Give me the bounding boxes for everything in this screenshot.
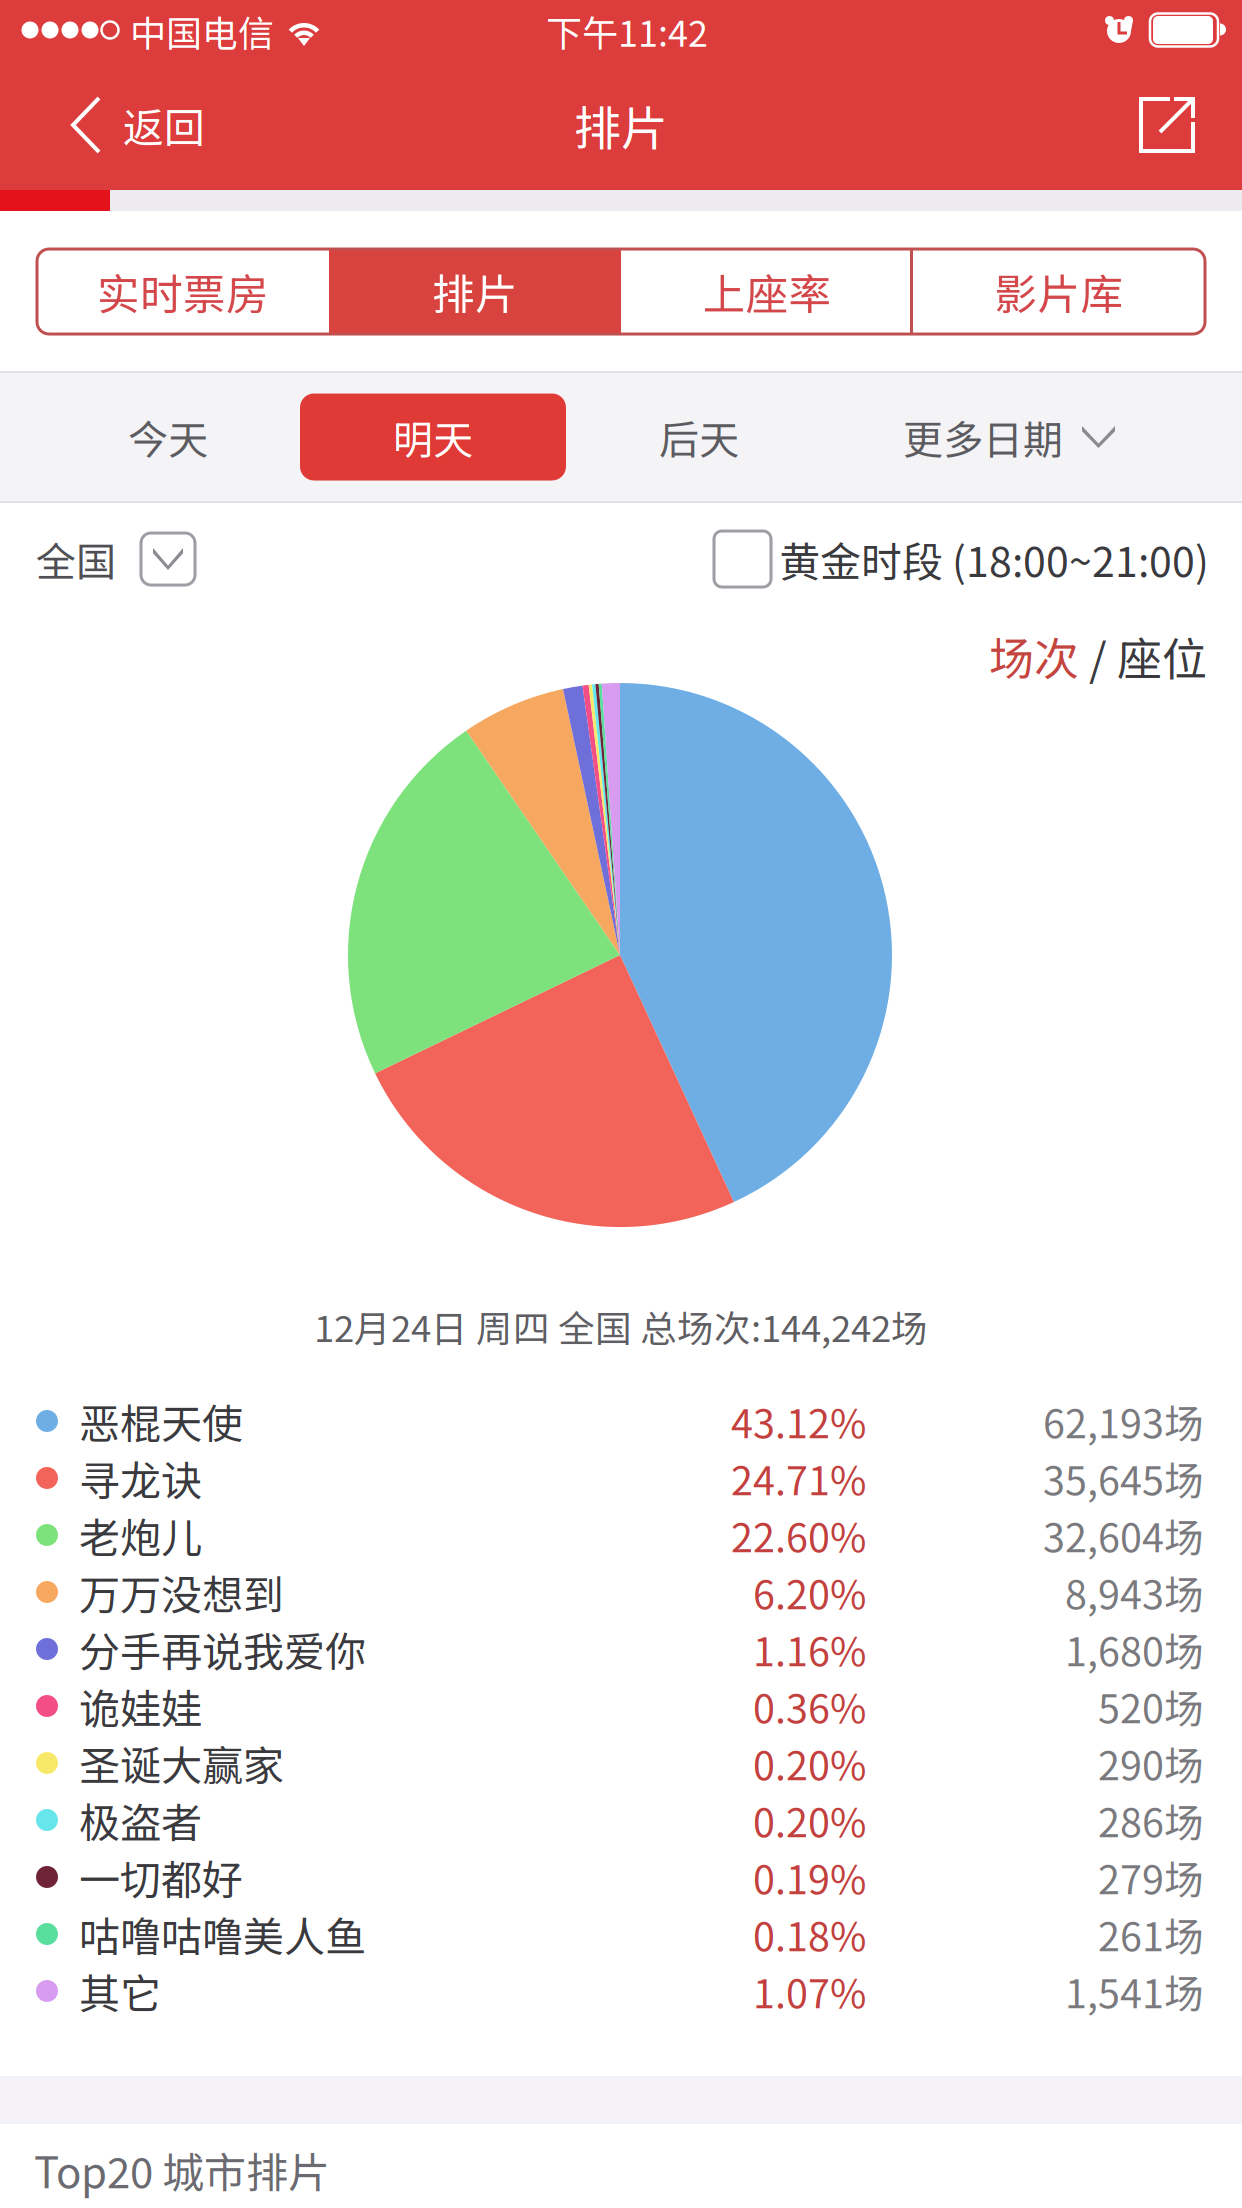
button[interactable]: 后天 — [584, 393, 814, 481]
staticText: 286场 — [1098, 1791, 1204, 1849]
staticText: 0.18% — [753, 1905, 866, 1963]
button[interactable]: 全国 — [36, 530, 195, 588]
staticText: 6.20% — [753, 1563, 866, 1621]
staticText: 上座率 — [702, 261, 831, 322]
staticText: 32,604场 — [1043, 1506, 1204, 1564]
staticText: 24.71% — [731, 1449, 866, 1507]
staticText: 520场 — [1098, 1677, 1204, 1735]
staticText: 座位 — [1117, 623, 1207, 689]
button[interactable]: 明天 — [300, 393, 566, 480]
staticText: 诡娃娃 — [79, 1676, 202, 1736]
button[interactable]: 更多日期 — [869, 393, 1149, 481]
staticText: 0.36% — [753, 1677, 866, 1735]
button[interactable]: 今天 — [53, 393, 283, 481]
button[interactable]: 排片 — [329, 249, 621, 334]
staticText: 返回 — [123, 95, 205, 155]
staticText: 22.60% — [731, 1506, 866, 1564]
staticText: 寻龙诀 — [79, 1448, 202, 1508]
staticText: 全国 — [36, 530, 116, 588]
staticText: 一切都好 — [79, 1847, 243, 1907]
staticText: / — [1079, 623, 1117, 689]
staticText: 0.19% — [753, 1848, 866, 1906]
staticText: 更多日期 — [903, 408, 1063, 466]
button[interactable]: 场次 — [907, 626, 1207, 686]
staticText: 影片库 — [994, 261, 1123, 322]
button[interactable]: 上座率 — [621, 249, 913, 334]
staticText: 极盗者 — [79, 1790, 202, 1850]
staticText: 老炮儿 — [79, 1505, 202, 1565]
staticText: 下午11:42 — [546, 5, 708, 57]
staticText: 62,193场 — [1043, 1392, 1204, 1450]
staticText: 35,645场 — [1043, 1449, 1204, 1507]
staticText: 1,541场 — [1065, 1962, 1204, 2020]
button[interactable]: 分享 — [1098, 60, 1242, 190]
staticText: 279场 — [1098, 1848, 1204, 1906]
staticText: 261场 — [1098, 1905, 1204, 1963]
staticText: 万万没想到 — [79, 1562, 284, 1622]
staticText: 圣诞大赢家 — [79, 1733, 284, 1793]
staticText: 1.16% — [753, 1620, 866, 1678]
staticText: 0.20% — [753, 1734, 866, 1792]
staticText: 43.12% — [731, 1392, 866, 1450]
staticText: 8,943场 — [1065, 1563, 1204, 1621]
staticText: 黄金时段 (18:00~21:00) — [779, 529, 1209, 589]
staticText: 中国电信 — [130, 5, 274, 57]
staticText: 明天 — [393, 408, 473, 466]
staticText: 咕噜咕噜美人鱼 — [79, 1904, 366, 1964]
button[interactable]: 黄金时段 (18:00~21:00) — [714, 529, 1209, 589]
staticText: 场次 — [989, 623, 1079, 689]
staticText: 0.20% — [753, 1791, 866, 1849]
button[interactable]: 返回 — [0, 60, 229, 190]
button[interactable]: 实时票房 — [37, 249, 329, 334]
staticText: 今天 — [128, 408, 208, 466]
staticText: 恶棍天使 — [79, 1391, 243, 1451]
staticText: 排片 — [574, 91, 668, 159]
staticText: 排片 — [432, 261, 518, 322]
staticText: 实时票房 — [97, 261, 269, 322]
staticText: 其它 — [79, 1961, 161, 2021]
staticText: 12月24日 周四 全国 总场次:144,242场 — [314, 1300, 928, 1352]
staticText: 分手再说我爱你 — [79, 1619, 366, 1679]
staticText: 1,680场 — [1065, 1620, 1204, 1678]
button[interactable]: 影片库 — [913, 249, 1205, 334]
staticText: 290场 — [1098, 1734, 1204, 1792]
staticText: 后天 — [659, 408, 739, 466]
staticText: 1.07% — [753, 1962, 866, 2020]
staticText: Top20 城市排片 — [34, 2140, 330, 2200]
